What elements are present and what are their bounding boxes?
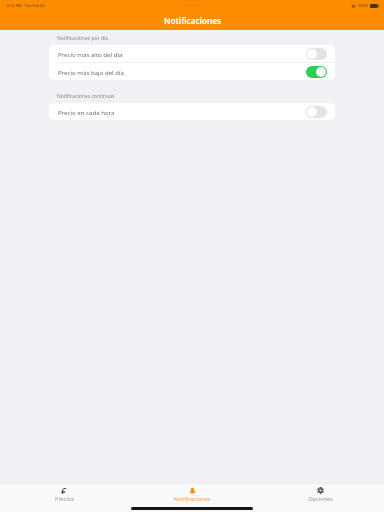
button[interactable]: Notificaciones (128, 485, 256, 502)
button[interactable]: Precio más alto del día (49, 45, 335, 62)
button[interactable]: Precio más bajo del día (49, 63, 335, 80)
staticText: Opciones (308, 495, 333, 502)
staticText: Notificaciones por día (57, 35, 109, 42)
staticText: 6:32 PM Tue Feb 22 (7, 3, 45, 8)
button[interactable]: Precio en cada hora (49, 103, 335, 120)
button[interactable]: € (0, 485, 128, 502)
button[interactable]: Opciones (256, 485, 384, 502)
staticText: € (61, 486, 67, 494)
staticText: Precios (55, 495, 74, 502)
button[interactable]: Activado (306, 66, 327, 78)
staticText: Notificaciones (173, 495, 211, 502)
button[interactable]: Desactivado (306, 106, 327, 118)
staticText: Precio en cada hora (58, 108, 115, 116)
staticText: Notificaciones continuas (57, 93, 115, 100)
staticText: 100% (358, 3, 368, 8)
staticText: Precio más bajo del día (58, 68, 124, 76)
staticText: Notificaciones (164, 15, 221, 26)
button[interactable]: Desactivado (306, 48, 327, 60)
staticText: Precio más alto del día (58, 50, 123, 58)
